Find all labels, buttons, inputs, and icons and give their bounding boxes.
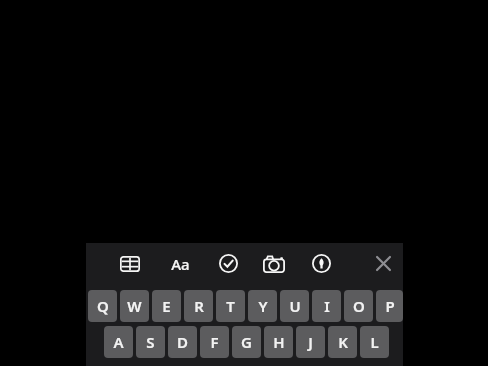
button[interactable]: S [136,326,165,358]
button[interactable]: D [168,326,197,358]
button[interactable]: T [216,290,245,322]
button[interactable]: P [376,290,403,322]
staticText: T [226,296,235,316]
button[interactable]: Q [88,290,117,322]
staticText: I [324,296,330,316]
button[interactable]: G [232,326,261,358]
button[interactable]: I [312,290,341,322]
button[interactable]: U [280,290,309,322]
button[interactable]: Close [369,243,397,284]
button[interactable]: L [360,326,389,358]
button[interactable]: Camera [260,243,288,284]
staticText: E [162,296,171,316]
staticText: Q [97,296,109,316]
staticText: Y [258,296,268,316]
button[interactable]: J [296,326,325,358]
staticText: U [289,296,301,316]
button[interactable]: A [104,326,133,358]
staticText: J [308,332,313,352]
staticText: A [113,332,124,352]
button[interactable]: K [328,326,357,358]
staticText: L [370,332,379,352]
button[interactable]: W [120,290,149,322]
button[interactable]: Y [248,290,277,322]
staticText: F [210,332,219,352]
button[interactable]: Text style [166,243,194,284]
staticText: R [194,296,204,316]
button[interactable]: F [200,326,229,358]
button[interactable]: Table [116,243,144,284]
staticText: P [385,296,395,316]
staticText: D [177,332,188,352]
staticText: O [353,296,365,316]
staticText: K [338,332,348,352]
button[interactable]: E [152,290,181,322]
button[interactable]: Done [214,243,242,284]
staticText: S [146,332,155,352]
button[interactable]: O [344,290,373,322]
staticText: G [241,332,252,352]
staticText: H [273,332,285,352]
button[interactable]: R [184,290,213,322]
button[interactable]: Draw [307,243,335,284]
staticText: W [127,296,142,316]
staticText: Aa [171,254,190,274]
button[interactable]: H [264,326,293,358]
